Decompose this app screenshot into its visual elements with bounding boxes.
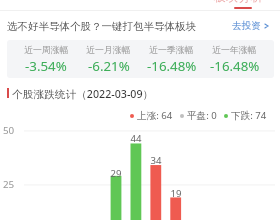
button[interactable]: 上涨: 64 (130, 109, 173, 122)
staticText: -16.48% (210, 57, 260, 75)
staticText: 50 (3, 124, 15, 137)
button[interactable]: 平盘: 0 (180, 109, 217, 122)
staticText: 上涨: 64 (137, 109, 173, 122)
button[interactable]: 近一年涨幅 (203, 40, 266, 78)
button[interactable]: 下跌: 74 (224, 109, 267, 122)
staticText: 平盘: 0 (187, 109, 217, 122)
button[interactable]: 近一月涨幅 (77, 40, 140, 78)
staticText: -6.21% (88, 57, 130, 75)
staticText: 29 (106, 167, 126, 180)
staticText: 25 (3, 178, 15, 191)
button[interactable]: 近一周涨幅 (15, 40, 77, 78)
staticText: 近一月涨幅 (86, 44, 131, 55)
button[interactable]: 近一季涨幅 (140, 40, 203, 78)
staticText: 44 (126, 132, 146, 145)
button[interactable]: 去投资 (232, 20, 269, 32)
staticText: 去投资 (232, 20, 261, 32)
staticText: 下跌: 74 (231, 109, 267, 122)
staticText: 近一年涨幅 (212, 44, 257, 55)
staticText: 近一周涨幅 (24, 44, 69, 55)
staticText: -16.48% (147, 57, 197, 75)
staticText: -3.54% (25, 57, 67, 75)
button[interactable]: 选不好半导体个股？一键打包半导体板块 (7, 20, 196, 33)
staticText: 19 (166, 187, 186, 200)
staticText: 个股涨跌统计（2022-03-09） (12, 87, 154, 102)
staticText: 34 (146, 154, 166, 167)
button[interactable]: 板块分析 (214, 0, 263, 4)
staticText: 近一季涨幅 (149, 44, 194, 55)
